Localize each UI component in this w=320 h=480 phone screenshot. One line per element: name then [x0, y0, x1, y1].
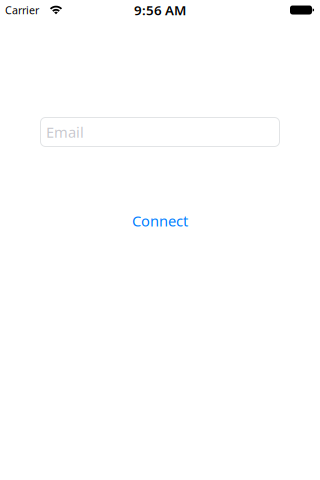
button[interactable]: Email: [40, 117, 280, 147]
staticText: Email: [46, 122, 84, 142]
staticText: 9:56 AM: [134, 1, 186, 19]
button[interactable]: Connect: [132, 211, 188, 230]
staticText: Connect: [132, 211, 188, 230]
staticText: Carrier: [5, 3, 39, 17]
